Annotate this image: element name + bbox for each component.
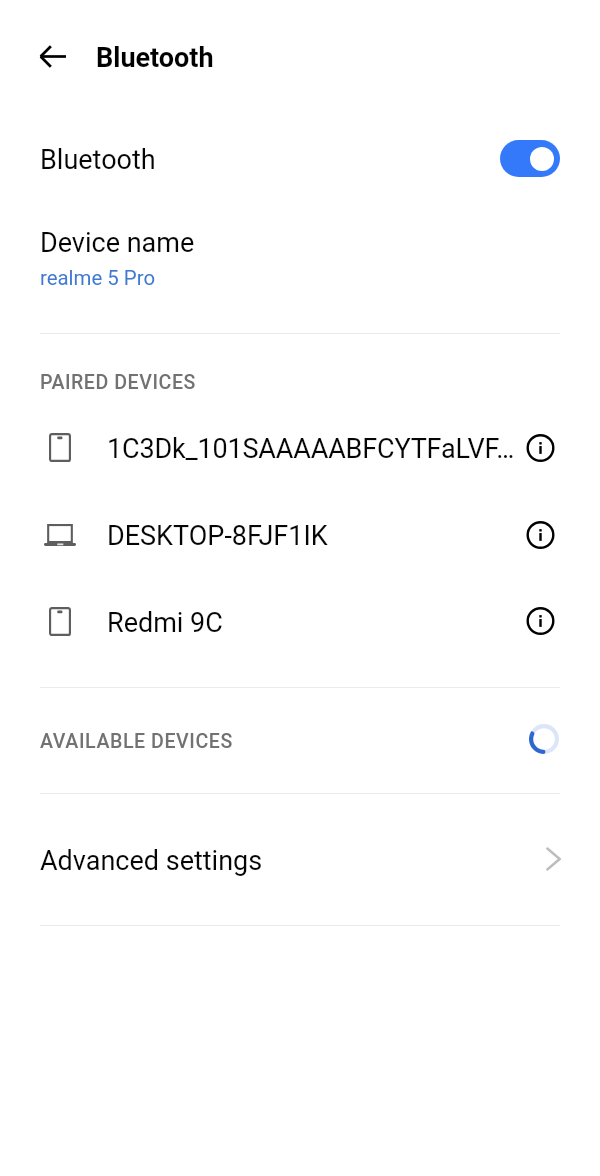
staticText: Bluetooth <box>40 144 156 176</box>
staticText: AVAILABLE DEVICES <box>40 730 233 753</box>
staticText: Advanced settings <box>40 845 263 877</box>
button[interactable]: Device name <box>0 206 600 302</box>
button[interactable]: Navigate up <box>24 28 80 84</box>
staticText: DESKTOP-8FJF1IK <box>107 520 328 552</box>
staticText: PAIRED DEVICES <box>40 371 196 394</box>
button[interactable]: Device settings for Redmi 9C <box>521 602 559 640</box>
button[interactable]: Bluetooth <box>0 118 600 202</box>
button[interactable]: Redmi 9C <box>0 580 600 666</box>
staticText: Device name <box>40 227 195 259</box>
button[interactable]: DESKTOP-8FJF1IK <box>0 493 600 579</box>
button[interactable]: Device settings for DESKTOP-8FJF1IK <box>521 516 559 554</box>
button[interactable]: Advanced settings <box>0 800 600 924</box>
other: Scanning for devices <box>529 724 559 754</box>
button[interactable]: 1C3Dk_101SAAAAABFCYTFaLVF… <box>0 406 600 492</box>
staticText: Redmi 9C <box>107 607 223 639</box>
staticText: realme 5 Pro <box>40 266 156 290</box>
staticText: Bluetooth <box>96 42 214 74</box>
button[interactable]: Bluetooth switch, on <box>500 140 560 177</box>
button[interactable]: Device settings for 1C3Dk_101SAAAAABFCYT… <box>521 429 559 467</box>
staticText: 1C3Dk_101SAAAAABFCYTFaLVF… <box>107 433 515 465</box>
